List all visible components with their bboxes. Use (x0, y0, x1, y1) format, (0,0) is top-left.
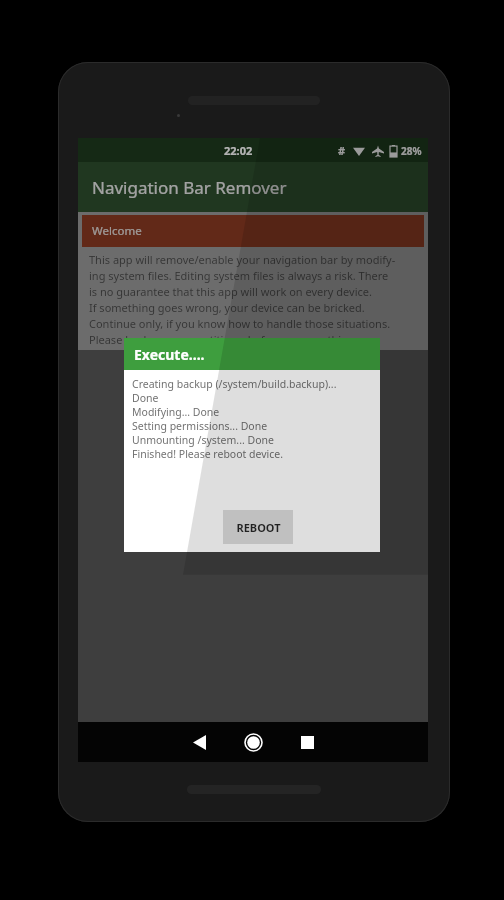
staticText: REBOOT (236, 520, 281, 535)
staticText: This app will remove/enable your navigat… (89, 252, 396, 347)
button[interactable]: Back (179, 722, 219, 762)
staticText: 28% (401, 144, 422, 158)
staticText: Creating backup (/system/build.backup)..… (132, 377, 337, 461)
button[interactable]: Recent apps (287, 722, 327, 762)
button[interactable]: Welcome (82, 215, 424, 247)
staticText: # (338, 143, 346, 158)
staticText: Navigation Bar Remover (92, 176, 287, 199)
staticText: Execute.... (134, 345, 205, 364)
staticText: 22:02 (224, 143, 253, 158)
staticText: Welcome (92, 223, 142, 239)
button[interactable]: REBOOT (223, 510, 293, 544)
button[interactable]: Home (233, 722, 273, 762)
